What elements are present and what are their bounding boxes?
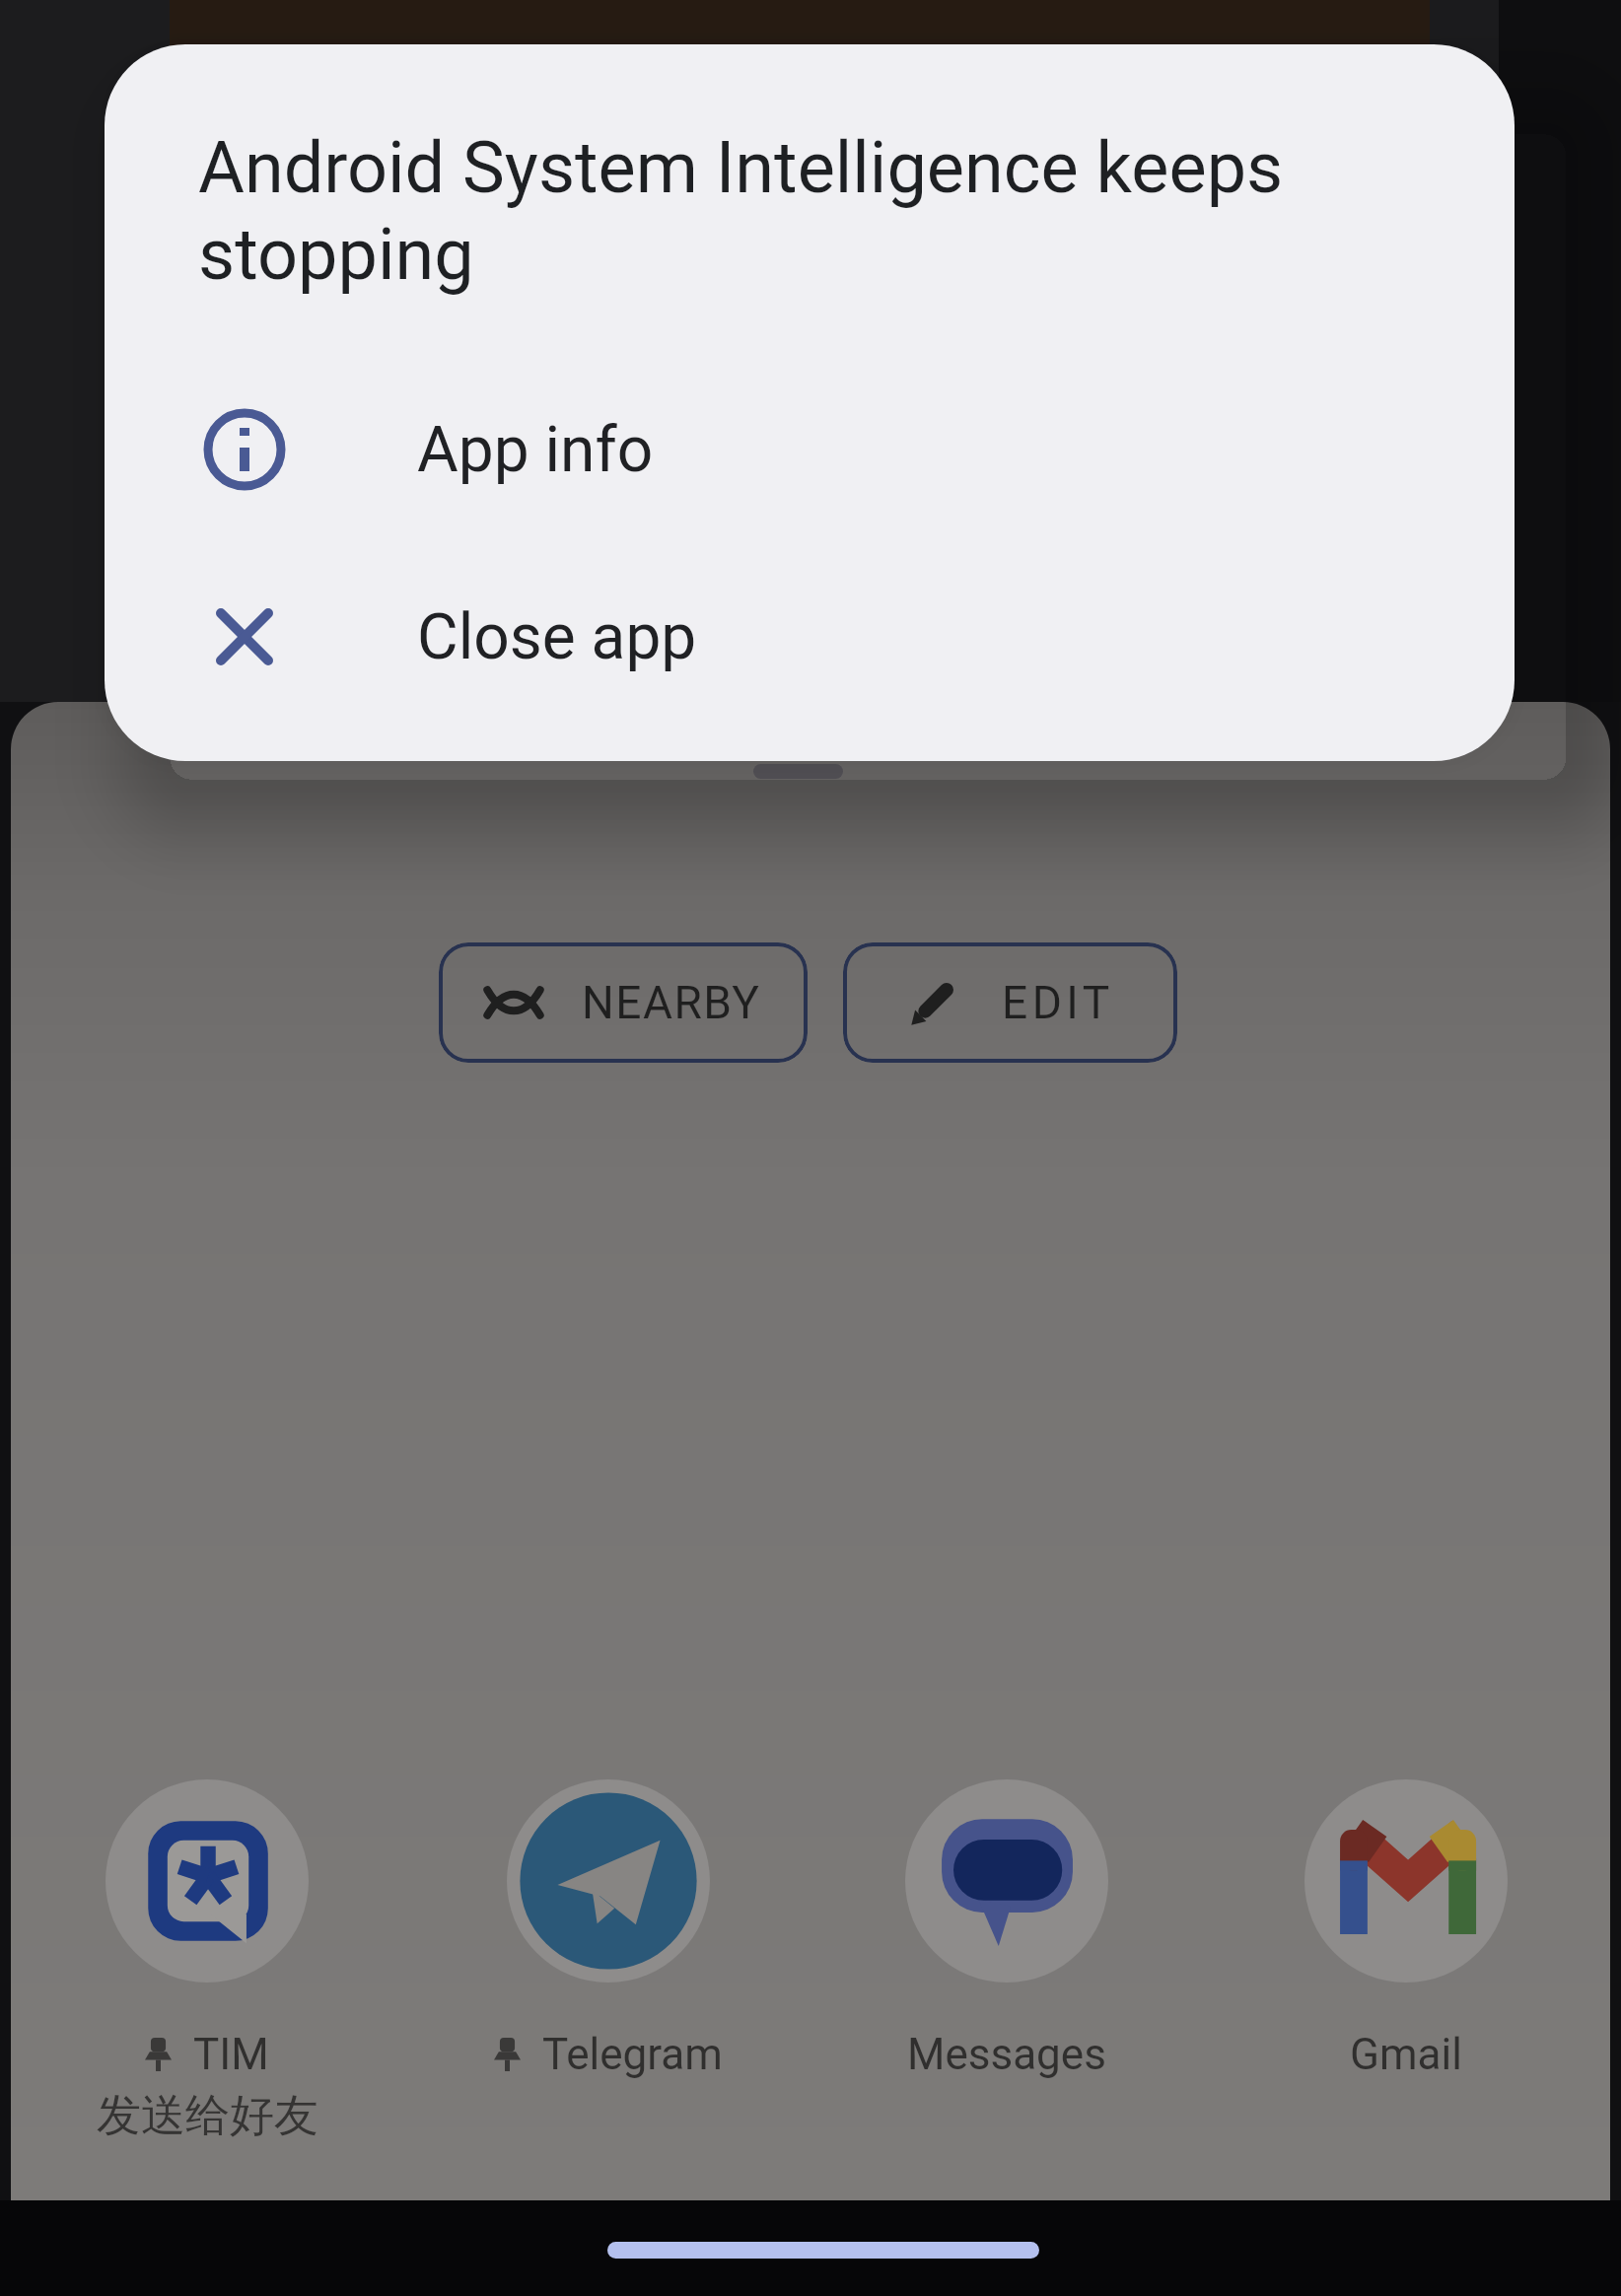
button[interactable]: Close app [203,578,1426,696]
button[interactable]: NEARBY [439,942,808,1063]
staticText: Close app [417,600,697,674]
button[interactable]: EDIT [843,942,1177,1063]
button[interactable]: App info [203,390,1426,509]
button[interactable] [106,1779,309,1983]
staticText: 发送给好友 [97,2088,318,2144]
button[interactable] [905,1779,1108,1983]
staticText: EDIT [1002,976,1114,1029]
staticText: Gmail [1350,2029,1462,2080]
button[interactable] [1304,1779,1508,1983]
staticText: Telegram [542,2029,723,2080]
staticText: Android System Intelligence keeps stoppi… [198,126,1284,297]
staticText: TIM [193,2029,269,2080]
staticText: App info [417,413,654,487]
staticText: NEARBY [582,976,761,1029]
staticText: Messages [907,2029,1106,2080]
button[interactable] [507,1779,710,1983]
